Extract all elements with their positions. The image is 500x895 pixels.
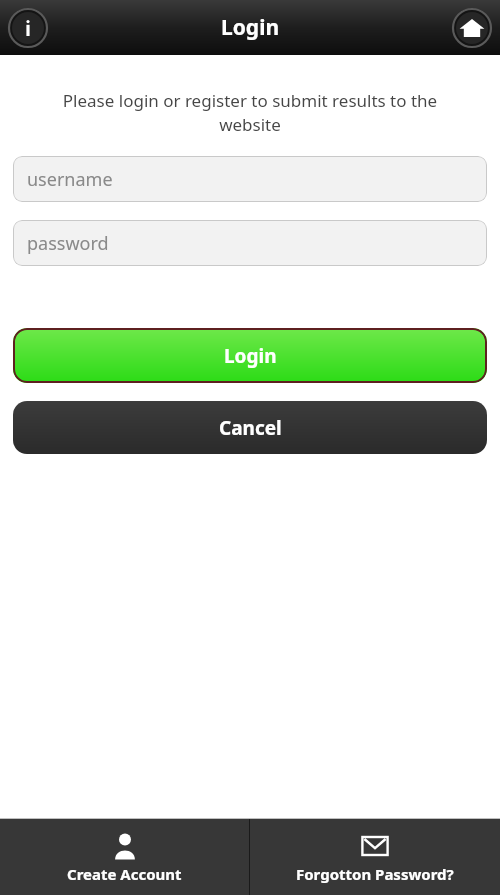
staticText: Please login or register to submit resul… <box>30 89 470 136</box>
staticText: username <box>27 167 113 192</box>
button[interactable]: password <box>13 220 487 266</box>
staticText: Login <box>221 13 280 42</box>
button[interactable]: username <box>13 156 487 202</box>
staticText: password <box>27 231 109 256</box>
staticText: Create Account <box>67 864 182 884</box>
staticText: Login <box>224 343 277 369</box>
button[interactable]: Info <box>6 6 50 50</box>
staticText: Cancel <box>219 415 282 441</box>
button[interactable]: Cancel <box>13 401 487 454</box>
button[interactable]: Home <box>450 6 494 50</box>
button[interactable]: Login <box>13 328 487 383</box>
button[interactable]: Forgotton Password? <box>250 819 500 895</box>
staticText: Forgotton Password? <box>296 864 454 884</box>
button[interactable]: Create Account <box>0 819 249 895</box>
